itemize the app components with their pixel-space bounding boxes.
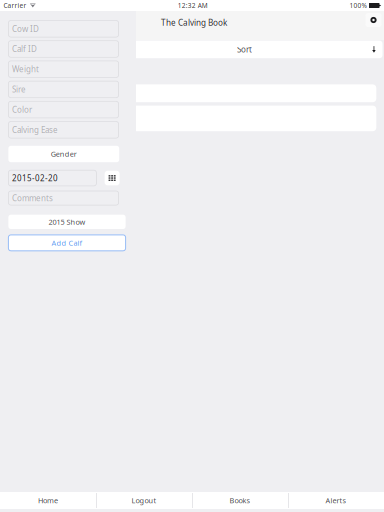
button[interactable]: Cow ID: [8, 20, 119, 37]
button[interactable]: Alerts: [288, 492, 384, 509]
staticText: Add Calf: [51, 238, 82, 248]
button[interactable]: Gender: [8, 146, 119, 162]
staticText: 12:32 AM: [178, 1, 208, 10]
button[interactable]: Comments: [8, 191, 119, 205]
button[interactable]: Color: [8, 101, 119, 118]
staticText: Calving Ease: [12, 124, 58, 135]
button[interactable]: Pick date: [105, 171, 120, 185]
staticText: Home: [38, 495, 58, 505]
staticText: Carrier: [3, 1, 26, 10]
button[interactable]: Logout: [96, 492, 192, 509]
button[interactable]: Weight: [8, 61, 119, 77]
staticText: Calf ID: [12, 44, 37, 54]
button[interactable]: Sire: [8, 81, 119, 98]
staticText: 2015-02-20: [12, 173, 58, 183]
staticText: Logout: [131, 495, 156, 505]
staticText: Sort: [237, 44, 252, 55]
staticText: 100%: [350, 1, 367, 10]
button[interactable]: Home: [0, 492, 96, 509]
staticText: Color: [12, 104, 32, 115]
button[interactable]: [107, 106, 376, 131]
button[interactable]: 2015-02-20: [8, 170, 96, 186]
staticText: Weight: [12, 64, 39, 75]
button[interactable]: Sort: [106, 41, 382, 58]
staticText: 2015 Show: [48, 217, 85, 227]
staticText: Books: [229, 495, 250, 505]
button[interactable]: Books: [192, 492, 288, 509]
button[interactable]: Calf ID: [8, 41, 119, 57]
staticText: Sire: [12, 84, 26, 95]
staticText: Alerts: [325, 495, 346, 505]
button[interactable]: Add Calf: [8, 235, 126, 251]
button[interactable]: Calving Ease: [8, 121, 119, 138]
staticText: Comments: [12, 193, 53, 203]
staticText: Gender: [51, 149, 77, 159]
staticText: The Calving Book: [161, 17, 227, 28]
button[interactable]: Settings: [365, 13, 381, 27]
button[interactable]: [107, 84, 376, 102]
staticText: Cow ID: [12, 23, 39, 34]
button[interactable]: 2015 Show: [8, 215, 126, 229]
